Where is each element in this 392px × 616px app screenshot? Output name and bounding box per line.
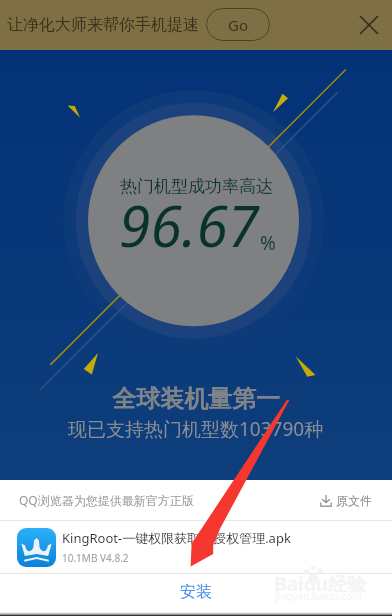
staticText: QQ浏览器为您提供最新官方正版 <box>19 492 194 508</box>
staticText: 安装 <box>180 582 212 602</box>
staticText: Go <box>228 15 248 35</box>
staticText: KingRoot-一键权限获取与授权管理.apk <box>62 529 291 547</box>
staticText: 全球装机量第一 <box>112 384 280 414</box>
staticText: 现已支持热门机型数103790种 <box>68 416 324 442</box>
button[interactable]: Go <box>206 8 270 41</box>
staticText: 热门机型成功率高达 <box>120 176 273 197</box>
button[interactable]: 安装 <box>0 574 392 610</box>
button[interactable]: 原文件 <box>320 493 372 508</box>
staticText: jingyan.baidu.com <box>275 589 362 603</box>
staticText: 让净化大师来帮你手机提速 <box>7 15 199 35</box>
staticText: % <box>260 230 276 256</box>
staticText: 96.67 <box>119 186 260 264</box>
button[interactable]: Close <box>348 4 390 46</box>
staticText: Baidu经验 <box>274 571 367 597</box>
staticText: 10.1MB V4.8.2 <box>62 551 129 565</box>
staticText: 原文件 <box>336 493 372 508</box>
